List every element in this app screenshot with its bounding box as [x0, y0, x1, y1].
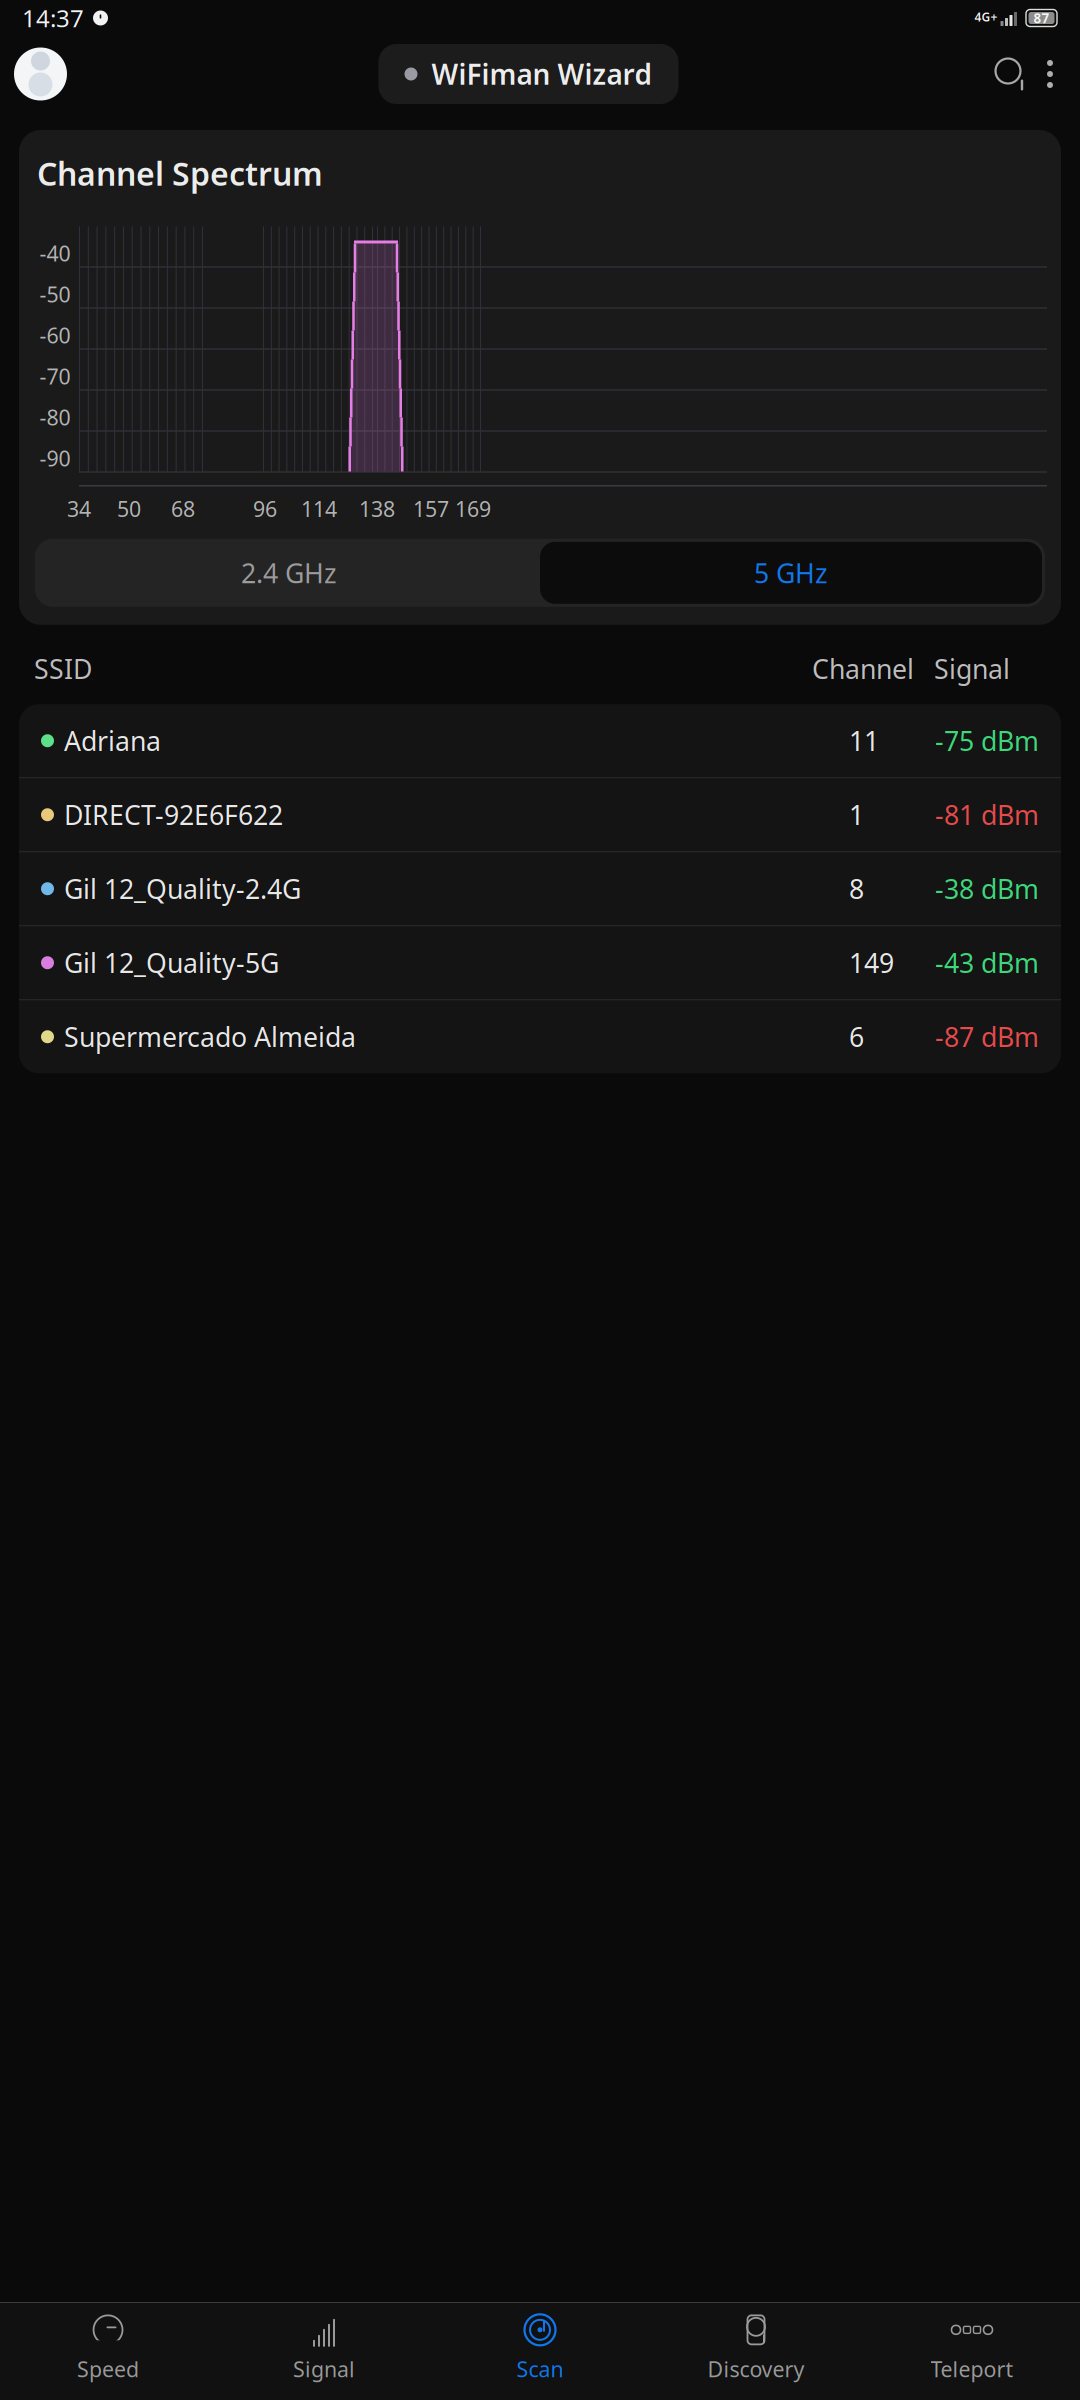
staticText: Signal	[293, 2355, 355, 2383]
staticText: -43 dBm	[935, 945, 1039, 980]
staticText: Speed	[77, 2355, 139, 2383]
staticText: 50	[117, 494, 141, 523]
staticText: 149	[849, 945, 894, 980]
staticText: WiFiman Wizard	[431, 55, 652, 93]
staticText: DIRECT-92E6F622	[64, 797, 283, 832]
staticText: 14:37	[22, 2, 84, 34]
staticText: 2.4 GHz	[241, 555, 337, 590]
staticText: 34	[67, 494, 91, 523]
staticText: 157	[413, 494, 449, 523]
staticText: Supermercado Almeida	[64, 1019, 356, 1054]
button[interactable]: Adriana	[19, 704, 1061, 777]
button[interactable]: Gil 12_Quality-5G	[19, 926, 1061, 999]
staticText: Channel	[812, 651, 914, 686]
staticText: -90	[39, 444, 70, 472]
staticText: SSID	[34, 651, 92, 686]
staticText: -87 dBm	[935, 1019, 1039, 1054]
button[interactable]: Discovery	[648, 2312, 864, 2384]
button[interactable]: Signal	[216, 2312, 432, 2384]
staticText: -40	[39, 239, 70, 267]
staticText: Gil 12_Quality-2.4G	[64, 871, 301, 906]
staticText: 4G+	[974, 9, 997, 25]
staticText: -75 dBm	[935, 723, 1039, 758]
staticText: 6	[849, 1019, 864, 1054]
staticText: -60	[39, 321, 70, 349]
button[interactable]: Search	[990, 53, 1032, 95]
staticText: Scan	[516, 2355, 563, 2383]
button[interactable]: Speed	[0, 2312, 216, 2384]
staticText: -50	[39, 280, 70, 308]
staticText: 11	[849, 723, 879, 758]
staticText: 68	[171, 494, 195, 523]
staticText: 169	[455, 494, 491, 523]
button[interactable]: Supermercado Almeida	[19, 1000, 1061, 1073]
button[interactable]: WiFiman Wizard	[378, 44, 678, 104]
button[interactable]: More options	[1032, 51, 1068, 97]
button[interactable]: 2.4 GHz	[38, 544, 540, 602]
staticText: Discovery	[707, 2355, 804, 2383]
staticText: 114	[301, 494, 337, 523]
button[interactable]: DIRECT-92E6F622	[19, 778, 1061, 851]
staticText: 96	[253, 494, 277, 523]
staticText: -70	[39, 362, 70, 390]
staticText: 5 GHz	[754, 555, 828, 590]
staticText: 87	[1033, 9, 1049, 27]
button[interactable]: Account	[14, 47, 67, 100]
staticText: 138	[359, 494, 395, 523]
staticText: Gil 12_Quality-5G	[64, 945, 279, 980]
staticText: -38 dBm	[935, 871, 1039, 906]
staticText: 1	[849, 797, 864, 832]
staticText: Signal	[934, 651, 1010, 686]
staticText: Teleport	[930, 2355, 1013, 2383]
staticText: 8	[849, 871, 864, 906]
staticText: -80	[39, 403, 70, 431]
button[interactable]: Gil 12_Quality-2.4G	[19, 852, 1061, 925]
staticText: -81 dBm	[935, 797, 1039, 832]
button[interactable]: Teleport	[864, 2312, 1080, 2384]
staticText: Channel Spectrum	[37, 152, 323, 194]
staticText: Adriana	[64, 723, 161, 758]
button[interactable]: 5 GHz	[540, 542, 1042, 604]
button[interactable]: Scan	[432, 2312, 648, 2384]
